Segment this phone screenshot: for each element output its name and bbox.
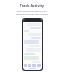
staticText: See a birds eye view of your relationshi… <box>3 10 61 16</box>
button[interactable]: App bar <box>23 19 42 22</box>
button[interactable]: Action 4 <box>37 64 41 67</box>
button[interactable]: Action 3 <box>32 64 36 67</box>
button[interactable] <box>24 30 29 32</box>
button[interactable]: Action 2 <box>28 64 31 67</box>
staticText: Track Activity <box>0 3 64 8</box>
button[interactable]: Action 1 <box>24 64 27 67</box>
